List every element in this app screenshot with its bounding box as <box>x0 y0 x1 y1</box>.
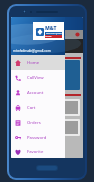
staticText: CallView <box>27 75 44 81</box>
button[interactable]: Orders <box>11 115 65 130</box>
button[interactable]: CallView <box>11 70 65 85</box>
staticText: Mobile Accessories <box>45 35 62 38</box>
staticText: M&T <box>45 25 57 32</box>
staticText: Diamond Quality <box>46 32 62 35</box>
button[interactable]: Account <box>11 85 65 100</box>
staticText: Account <box>27 90 44 96</box>
staticText: Orders <box>27 120 41 126</box>
button[interactable]: Cart <box>11 100 65 115</box>
other: Home button <box>36 165 58 171</box>
staticText: Favorite <box>27 149 44 155</box>
button[interactable]: Password <box>11 130 65 145</box>
staticText: mtwholesale@gmail.com <box>13 49 51 53</box>
staticText: Cart <box>27 105 36 111</box>
button[interactable]: Favorite <box>11 145 65 158</box>
staticText: Password <box>27 135 47 141</box>
button[interactable]: Home <box>11 55 65 70</box>
staticText: Home <box>27 60 40 66</box>
